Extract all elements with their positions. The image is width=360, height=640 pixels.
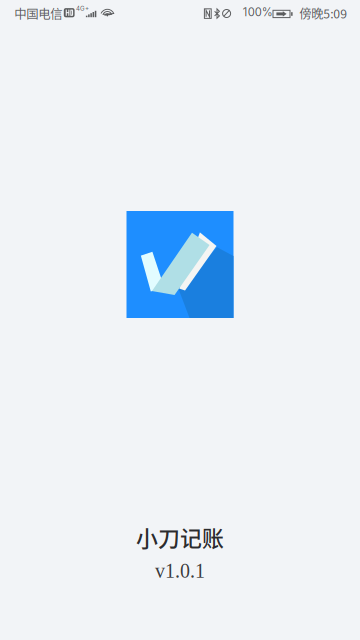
staticText: 100%: [243, 5, 273, 19]
staticText: 中国电信: [14, 4, 62, 22]
staticText: v1.0.1: [155, 560, 205, 582]
staticText: 傍晚5:09: [299, 4, 347, 22]
staticText: 4G+: [76, 5, 89, 12]
staticText: 小刀记账: [136, 521, 224, 553]
